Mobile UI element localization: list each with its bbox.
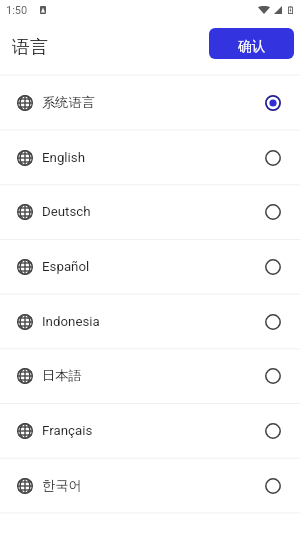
other: Select [265, 423, 281, 439]
staticText: Español [42, 259, 90, 275]
other: Select [265, 314, 281, 330]
button[interactable]: Deutsch [0, 184, 300, 239]
staticText: 系统语言 [42, 94, 96, 111]
other: Select [265, 368, 281, 384]
button[interactable]: 한국어 [0, 458, 300, 513]
button[interactable]: English [0, 130, 300, 185]
other: Select [265, 478, 281, 494]
staticText: 한국어 [42, 477, 82, 494]
button[interactable]: 确认 [209, 28, 294, 59]
staticText: Indonesia [42, 314, 100, 330]
staticText: 确认 [238, 38, 266, 55]
staticText: English [42, 150, 86, 166]
staticText: 1:50 [6, 4, 28, 17]
other: Select [265, 150, 281, 166]
staticText: Deutsch [42, 204, 91, 220]
other: Select [265, 204, 281, 220]
other: Selected [265, 95, 281, 111]
staticText: 语言 [12, 36, 48, 59]
button[interactable]: Español [0, 239, 300, 294]
staticText: 日本語 [42, 367, 82, 384]
button[interactable]: Indonesia [0, 294, 300, 349]
staticText: Français [42, 423, 93, 439]
button[interactable]: Français [0, 403, 300, 458]
button[interactable]: 系统语言 [0, 75, 300, 130]
other: Select [265, 259, 281, 275]
button[interactable]: 日本語 [0, 348, 300, 403]
